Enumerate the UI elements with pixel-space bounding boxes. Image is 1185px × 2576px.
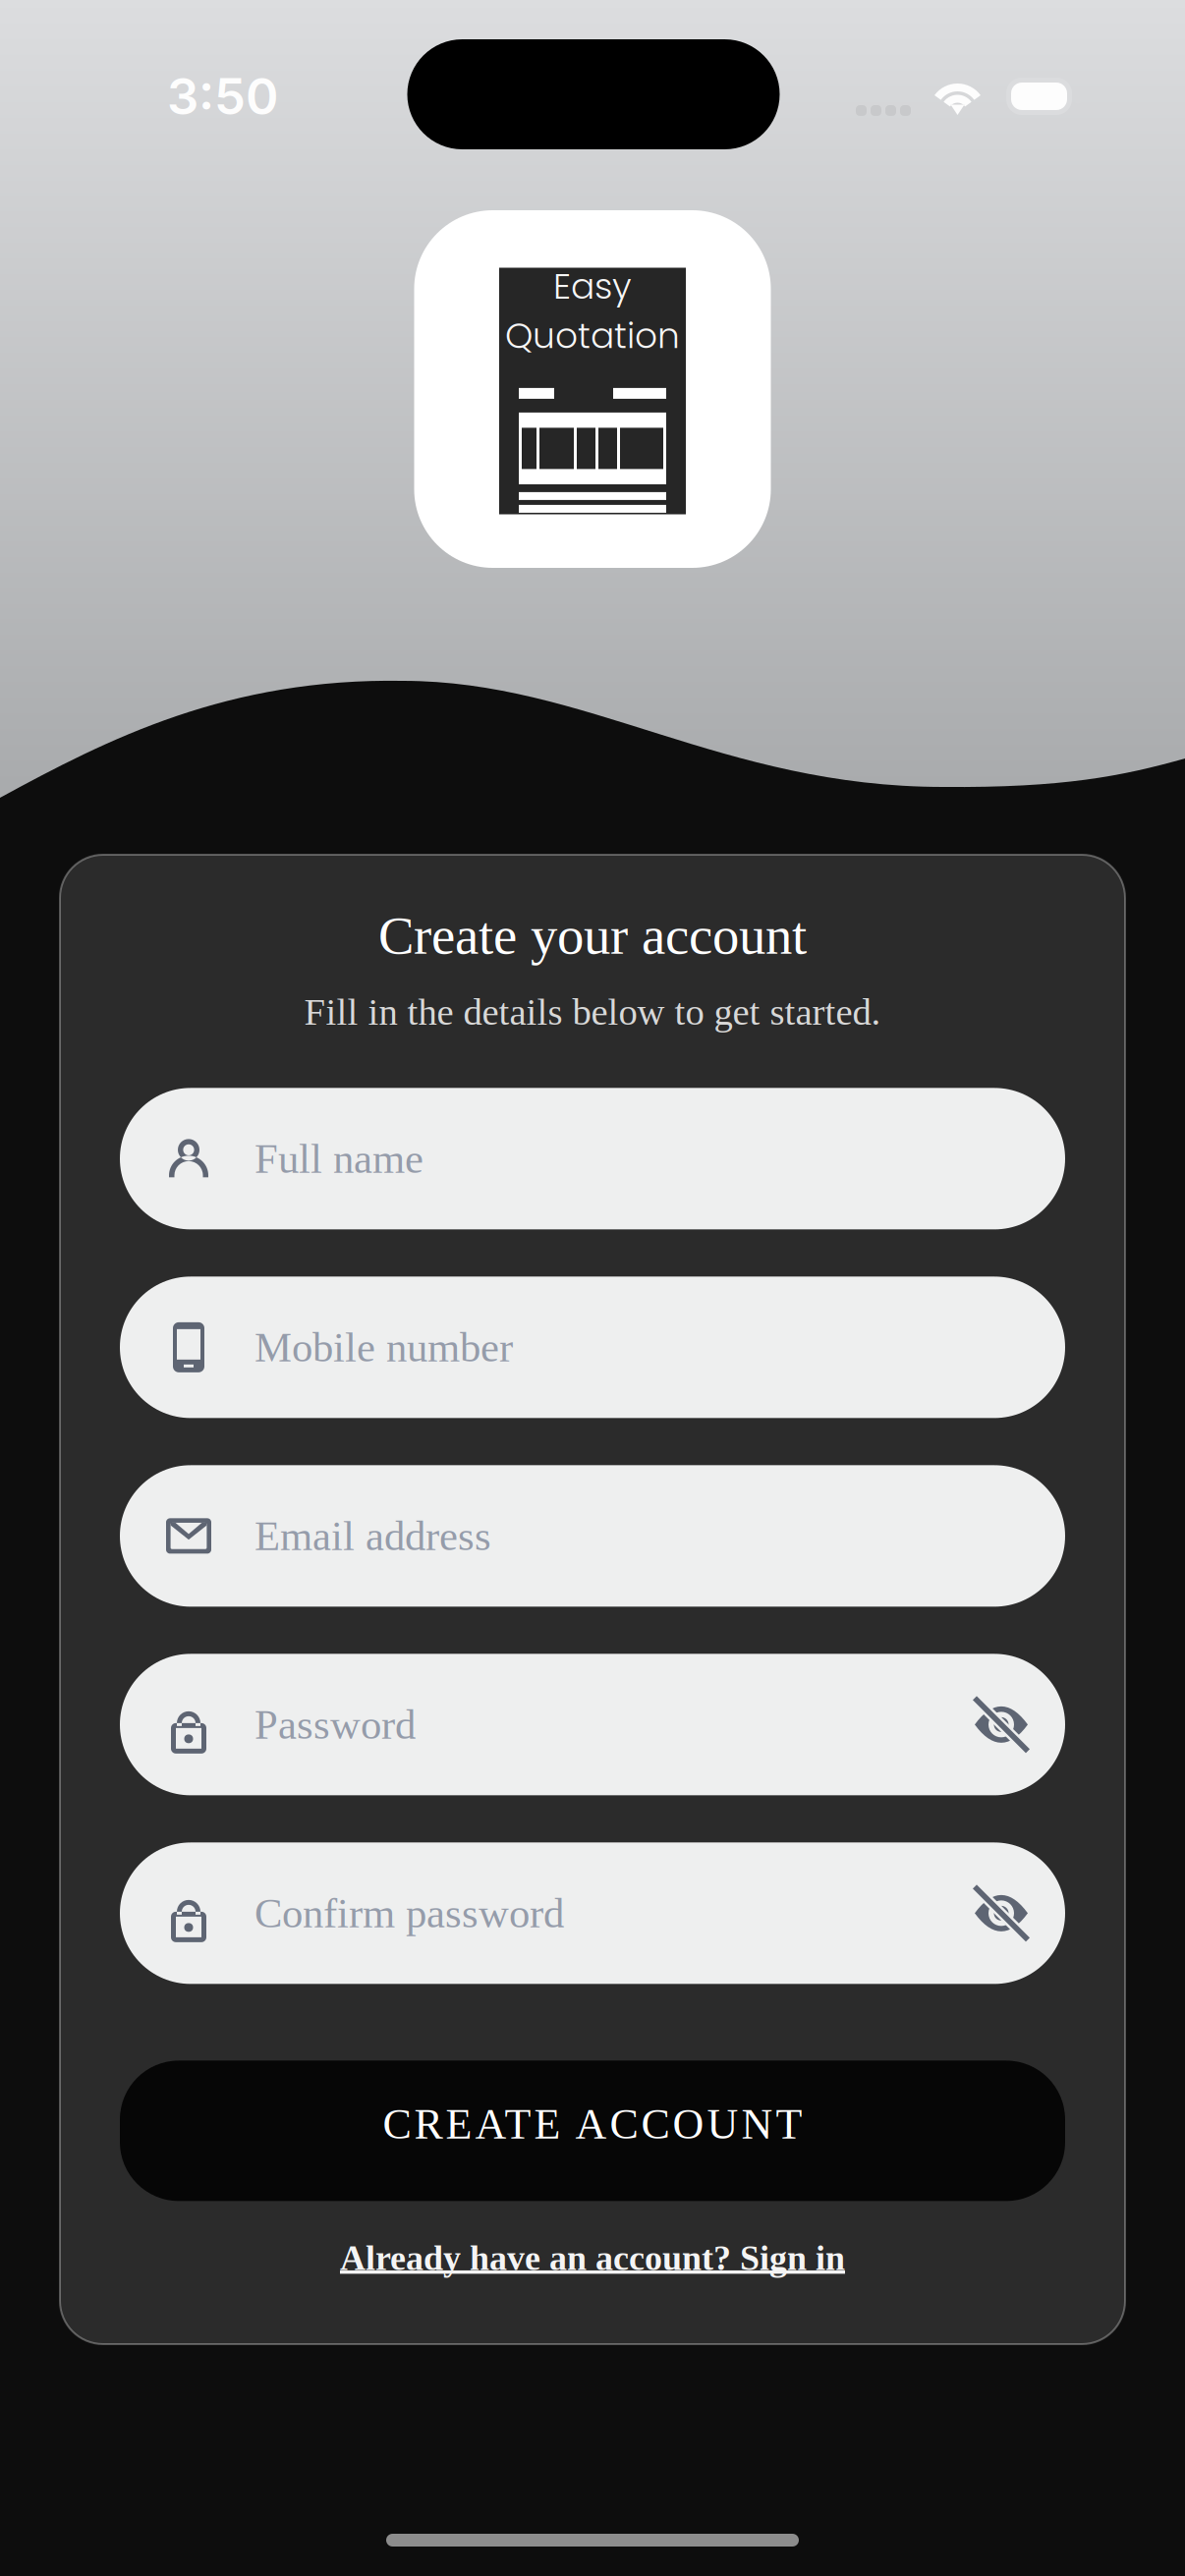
staticText: Password xyxy=(254,1701,416,1748)
staticText: Easy xyxy=(553,261,632,311)
button[interactable]: Mobile number xyxy=(120,1277,1065,1418)
staticText: CREATE ACCOUNT xyxy=(383,2100,802,2148)
button[interactable]: CREATE ACCOUNT xyxy=(120,2061,1065,2201)
button[interactable]: Password xyxy=(120,1654,1065,1795)
staticText: Confirm password xyxy=(254,1890,564,1936)
staticText: 3:50 xyxy=(167,66,278,126)
staticText: Already have an account? Sign in xyxy=(340,2238,845,2278)
staticText: Create your account xyxy=(378,906,807,965)
button[interactable]: Full name xyxy=(120,1088,1065,1229)
staticText: Fill in the details below to get started… xyxy=(304,991,881,1033)
staticText: Mobile number xyxy=(254,1324,513,1371)
button[interactable]: Confirm password xyxy=(120,1842,1065,1984)
staticText: Full name xyxy=(254,1135,423,1182)
staticText: Email address xyxy=(254,1513,491,1559)
button[interactable]: Email address xyxy=(120,1465,1065,1607)
button[interactable]: Already have an account? Sign in xyxy=(340,2238,845,2278)
staticText: Quotation xyxy=(505,311,680,360)
